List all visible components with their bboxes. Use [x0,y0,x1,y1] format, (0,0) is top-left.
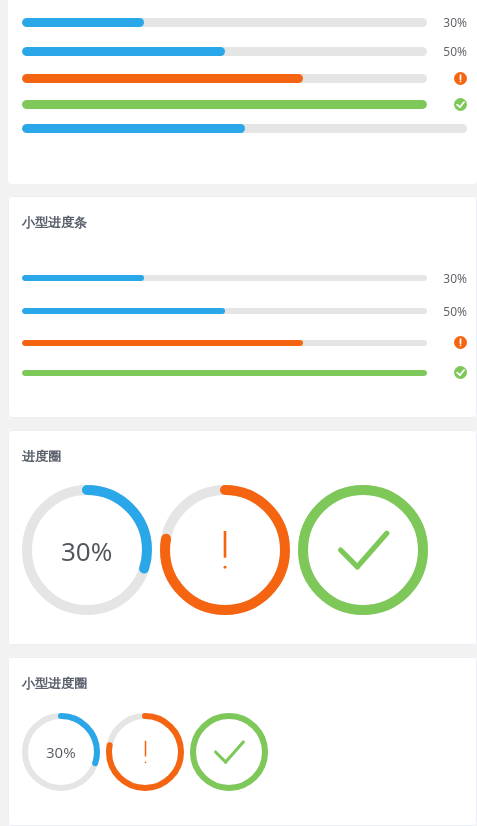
button[interactable]: 小型进度条 [8,196,477,418]
staticText: 30% [46,742,76,762]
staticText: 30% [443,270,467,286]
staticText: 50% [443,43,467,59]
button[interactable]: 进度圈 [8,430,477,645]
staticText: 50% [443,303,467,319]
button[interactable]: 小型进度圈 [8,657,477,826]
staticText: 小型进度圈 [22,675,87,691]
button[interactable]: 30% [8,0,477,184]
staticText: 进度圈 [22,448,61,464]
staticText: 小型进度条 [22,214,87,230]
staticText: 30% [61,533,113,568]
staticText: 30% [443,14,467,30]
